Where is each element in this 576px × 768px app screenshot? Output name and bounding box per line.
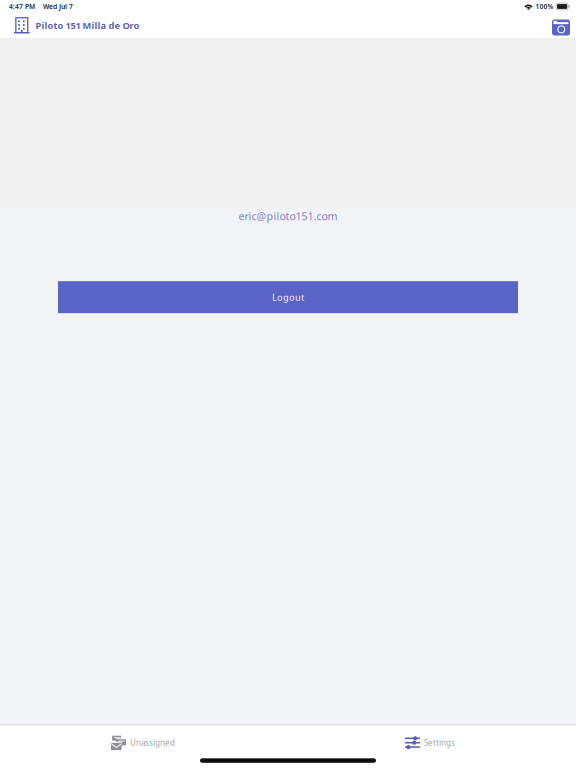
button[interactable]: Camera: [545, 13, 576, 38]
staticText: Logout: [272, 291, 304, 303]
staticText: Unassigned: [130, 737, 175, 748]
button[interactable]: Unassigned: [111, 732, 175, 754]
staticText: 100%: [535, 2, 553, 11]
staticText: Piloto 151 Milla de Oro: [35, 19, 139, 32]
button[interactable]: Logout: [58, 281, 518, 313]
staticText: Wed Jul 7: [43, 2, 73, 11]
button[interactable]: Settings: [405, 732, 455, 754]
staticText: 4:47 PM: [9, 2, 35, 11]
staticText: eric@piloto151.com: [238, 209, 337, 223]
button[interactable]: Piloto 151 Milla de Oro: [0, 13, 147, 38]
staticText: Settings: [424, 737, 455, 748]
